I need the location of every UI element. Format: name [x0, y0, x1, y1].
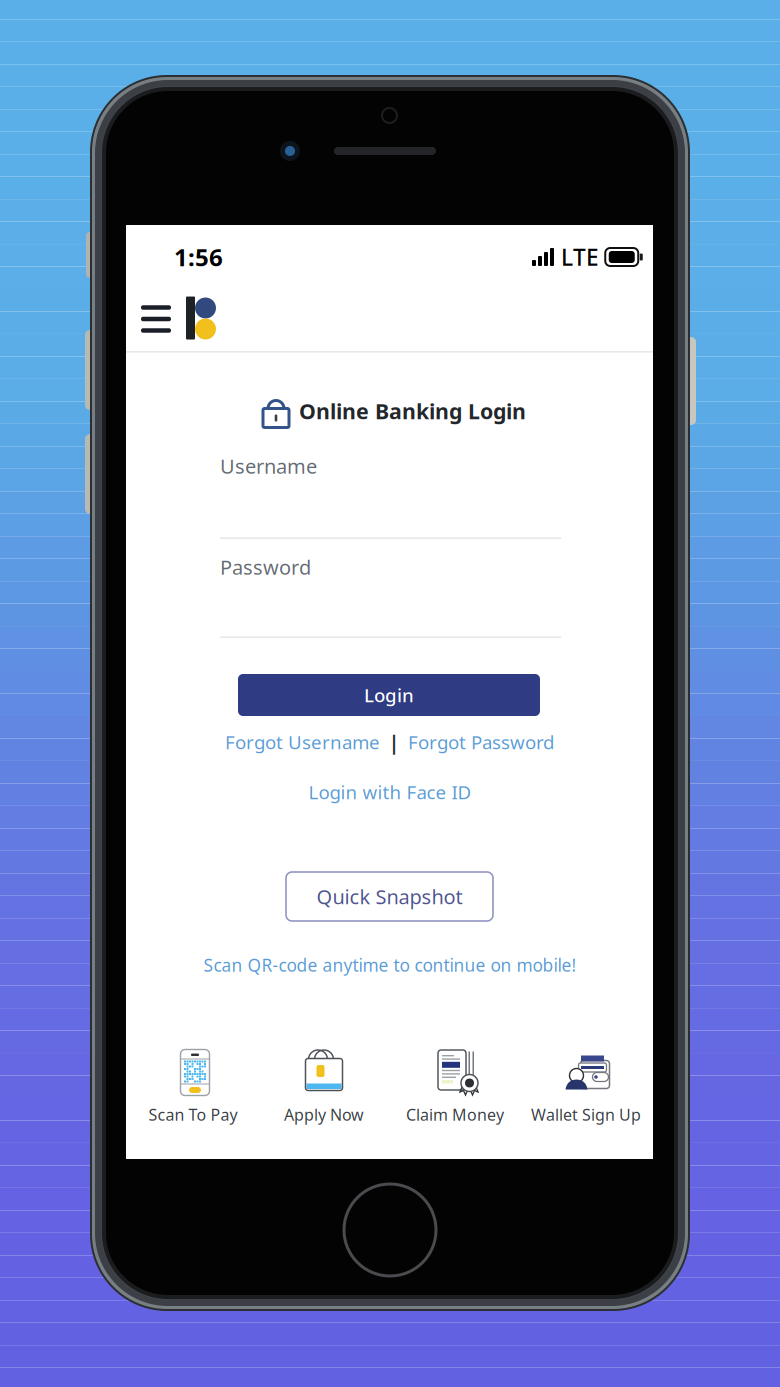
- button[interactable]: Apply Now: [258, 1033, 389, 1125]
- staticText: LTE: [561, 242, 599, 272]
- button[interactable]: Menu: [141, 303, 187, 335]
- staticText: 1:56: [174, 241, 223, 273]
- staticText: Online Banking Login: [299, 397, 526, 425]
- button[interactable]: Forgot Password: [408, 729, 566, 755]
- button[interactable]: Forgot Username: [222, 729, 380, 755]
- button[interactable]: Wallet Sign Up: [520, 1033, 651, 1125]
- staticText: |: [388, 729, 399, 755]
- staticText: Username: [220, 453, 317, 479]
- staticText: Password: [220, 554, 311, 580]
- staticText: Claim Money: [406, 1104, 504, 1125]
- button[interactable]: Login: [238, 674, 540, 716]
- staticText: Apply Now: [284, 1104, 364, 1125]
- button[interactable]: Quick Snapshot: [286, 872, 493, 921]
- button[interactable]: Home: [186, 295, 226, 341]
- staticText: Scan To Pay: [148, 1104, 237, 1125]
- staticText: Login: [364, 683, 414, 707]
- staticText: Forgot Password: [408, 730, 554, 754]
- button[interactable]: Username: [220, 453, 561, 539]
- staticText: Forgot Username: [225, 730, 380, 754]
- button[interactable]: Password: [220, 554, 561, 638]
- button[interactable]: Login with Face ID: [300, 778, 480, 806]
- staticText: Quick Snapshot: [316, 883, 462, 910]
- button[interactable]: Scan QR-code anytime to continue on mobi…: [190, 952, 590, 978]
- staticText: Wallet Sign Up: [531, 1104, 641, 1125]
- button[interactable]: Scan To Pay: [127, 1033, 258, 1125]
- staticText: Login with Face ID: [308, 780, 471, 804]
- staticText: Scan QR-code anytime to continue on mobi…: [203, 953, 576, 976]
- button[interactable]: Claim Money: [389, 1033, 520, 1125]
